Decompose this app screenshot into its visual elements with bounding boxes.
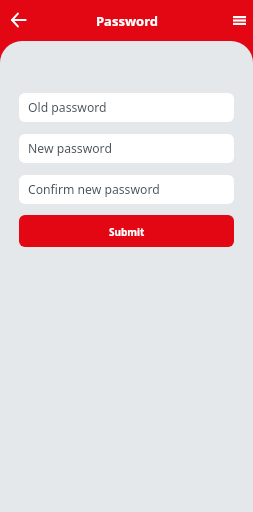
button[interactable]: Confirm new password [19, 175, 234, 204]
staticText: New password [28, 140, 112, 157]
staticText: Old password [28, 99, 107, 116]
button[interactable]: New password [19, 134, 234, 163]
button[interactable]: Old password [19, 93, 234, 122]
staticText: Password [96, 12, 158, 30]
staticText: Confirm new password [28, 181, 160, 198]
button[interactable]: Menu [222, 3, 253, 37]
button[interactable]: Submit [19, 215, 234, 247]
button[interactable]: Back [1, 3, 35, 37]
staticText: Submit [109, 225, 145, 239]
